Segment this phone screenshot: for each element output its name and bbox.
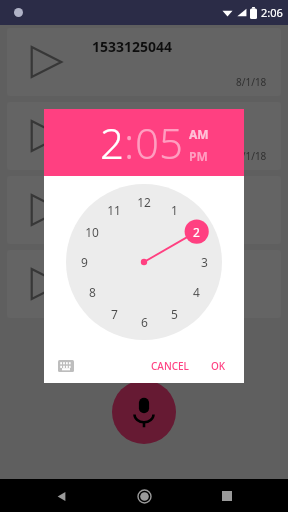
button[interactable]: 10 (80, 223, 104, 241)
staticText: 8 (89, 284, 96, 300)
staticText: 8/1/18 (236, 75, 267, 89)
button[interactable] (7, 176, 281, 244)
button[interactable]: OK (205, 353, 232, 379)
staticText: : (124, 114, 135, 171)
button[interactable]: 6 (132, 313, 156, 331)
button[interactable]: 1533123... (7, 102, 281, 170)
button[interactable]: 8 (80, 283, 104, 301)
button[interactable]: Record (112, 380, 176, 444)
staticText: 7 (111, 306, 118, 322)
staticText: PM (189, 148, 208, 164)
staticText: 1533125044 (92, 37, 173, 56)
button[interactable]: Home (131, 483, 157, 509)
button[interactable] (7, 250, 281, 318)
button[interactable]: 1533125044 (7, 28, 281, 96)
button[interactable]: 3 (192, 253, 216, 271)
button[interactable]: 11 (102, 201, 126, 219)
staticText: OK (211, 359, 226, 373)
button[interactable]: AM (189, 126, 209, 142)
button[interactable]: 2 (100, 114, 124, 171)
staticText: 9 (81, 254, 88, 270)
staticText: 3 (201, 254, 208, 270)
button[interactable]: CANCEL (145, 353, 195, 379)
button[interactable]: 4 (184, 283, 208, 301)
staticText: 1 (171, 202, 178, 218)
button[interactable]: 12 (132, 193, 156, 211)
staticText: 1533123... (92, 111, 160, 130)
button[interactable]: 5 (162, 305, 186, 323)
staticText: 8/1/18 (236, 149, 267, 163)
staticText: 6 (141, 314, 148, 330)
button[interactable]: Back (48, 483, 74, 509)
staticText: 05 (135, 114, 183, 171)
button[interactable]: 05 (135, 114, 183, 171)
button[interactable]: 9 (72, 253, 96, 271)
staticText: 2 (193, 224, 200, 240)
button[interactable]: 7 (102, 305, 126, 323)
staticText: 4 (193, 284, 200, 300)
staticText: 11 (107, 202, 121, 218)
staticText: 10 (85, 224, 99, 240)
staticText: 12 (137, 194, 151, 210)
button[interactable]: Recents (214, 483, 240, 509)
staticText: 5 (171, 306, 178, 322)
button[interactable]: 2 (184, 223, 208, 241)
staticText: 2 (100, 114, 124, 171)
staticText: CANCEL (151, 359, 189, 373)
staticText: 2:06 (261, 5, 283, 20)
staticText: AM (189, 126, 209, 142)
button[interactable]: 1 (162, 201, 186, 219)
button[interactable]: Switch to keyboard input (54, 354, 78, 378)
button[interactable]: PM (189, 148, 208, 164)
